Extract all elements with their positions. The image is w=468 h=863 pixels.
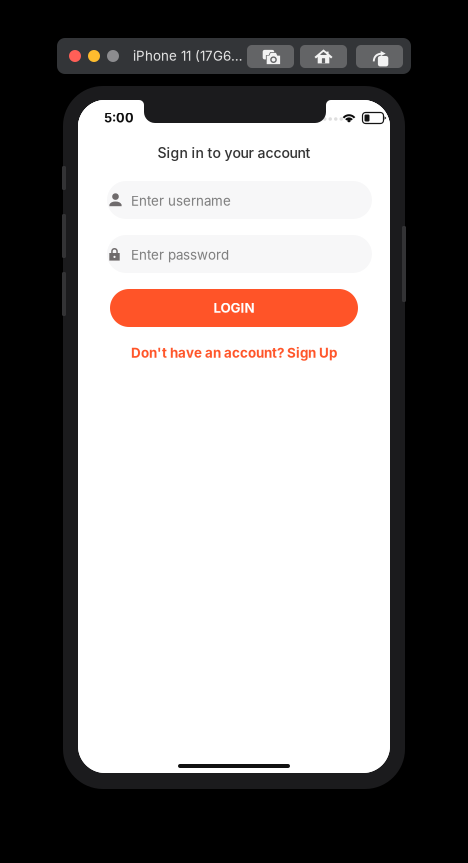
button[interactable]: Screenshot — [247, 45, 294, 68]
button[interactable]: Home — [300, 45, 347, 68]
staticText: LOGIN — [213, 300, 254, 316]
button[interactable]: Don't have an account? Sign Up — [78, 344, 390, 362]
staticText: Enter username — [131, 193, 231, 209]
staticText: Enter password — [131, 247, 229, 263]
staticText: 5:00 — [104, 110, 134, 126]
button[interactable]: Rotate — [356, 45, 403, 68]
staticText: iPhone 11 (17G6… — [133, 48, 243, 64]
button[interactable]: Enter password — [107, 235, 372, 273]
button[interactable]: Enter username — [107, 181, 372, 219]
button[interactable]: LOGIN — [110, 289, 358, 327]
staticText: Don't have an account? Sign Up — [131, 345, 337, 361]
staticText: Sign in to your account — [157, 144, 310, 161]
